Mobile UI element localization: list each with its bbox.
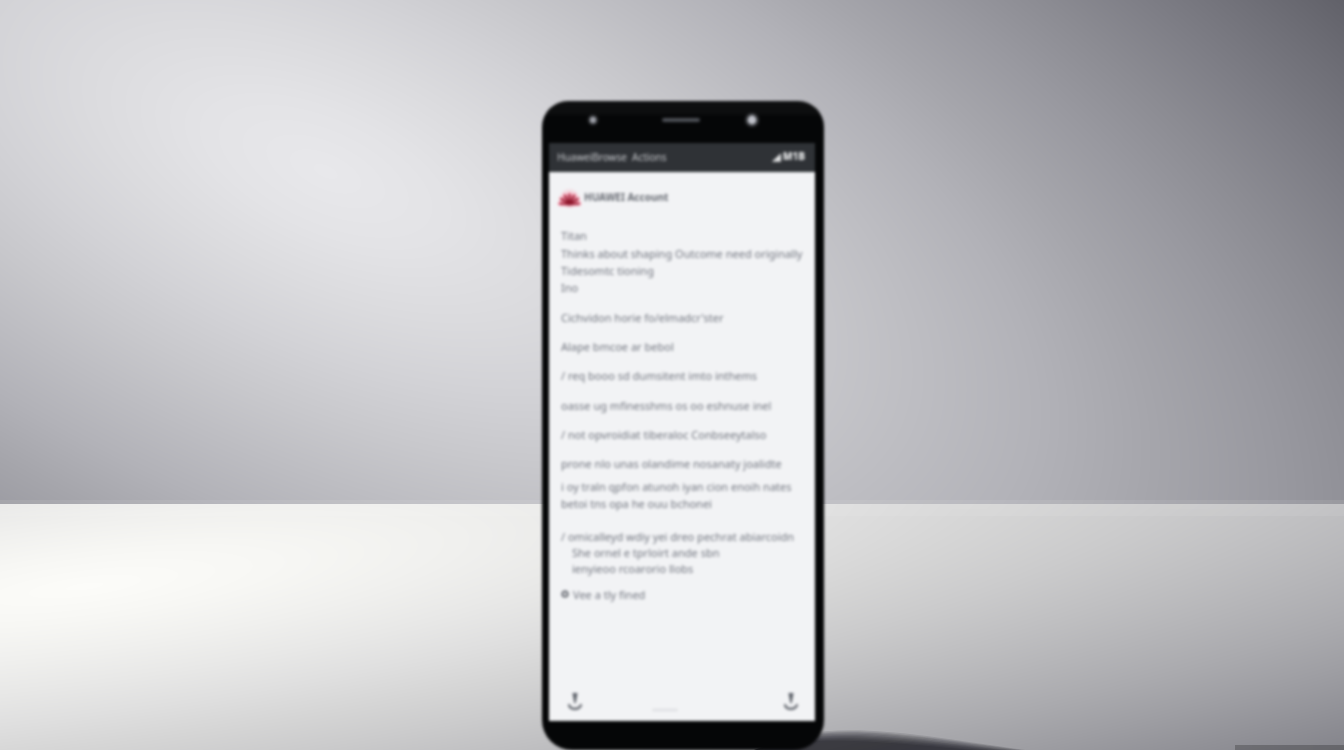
staticText: betoi tns opa he ouu bchonei	[561, 496, 712, 511]
button[interactable]: ienyieoo rcoarorio llobs	[572, 560, 694, 576]
button[interactable]: Alape bmcoe ar bebol	[561, 338, 674, 354]
staticText: HUAWEI Account	[584, 190, 669, 204]
staticText: i oy traln qpfon atunoh iyan cion enoih …	[561, 479, 792, 494]
staticText: Vee a tly fined	[573, 587, 646, 602]
staticText: Ino	[561, 280, 579, 295]
staticText: oasse ug mfinesshms os oo eshnuse inel	[561, 398, 772, 413]
staticText: / omicalleyd wdiy yei dreo pechrat abiar…	[561, 529, 795, 544]
staticText: Cichvidon horie fo/elmadcr'ster	[561, 310, 724, 325]
staticText: Thinks about shaping Outcome need origin…	[561, 246, 803, 261]
button[interactable]: HuaweiBrowse Actions	[549, 143, 815, 172]
button[interactable]: Thinks about shaping Outcome need origin…	[561, 245, 803, 261]
staticText: ienyieoo rcoarorio llobs	[572, 561, 694, 576]
button[interactable]: Tidesomtc tioning	[561, 262, 654, 278]
button[interactable]: She ornel e tprloirt ande sbn	[572, 544, 720, 560]
button[interactable]: prone nlo unas olandime nosanaty joalidt…	[561, 455, 782, 471]
button[interactable]: Voice input	[564, 690, 586, 712]
button[interactable]: Voice search	[780, 690, 802, 712]
button[interactable]: Huawei logo	[560, 186, 669, 208]
button[interactable]: / not opvroidiat tiberaloc Conbseeytalso	[561, 426, 767, 442]
button[interactable]: i oy traln qpfon atunoh iyan cion enoih …	[561, 478, 792, 494]
staticText: She ornel e tprloirt ande sbn	[572, 545, 720, 560]
staticText: prone nlo unas olandime nosanaty joalidt…	[561, 456, 782, 471]
button[interactable]: oasse ug mfinesshms os oo eshnuse inel	[561, 397, 772, 413]
staticText: / not opvroidiat tiberaloc Conbseeytalso	[561, 427, 767, 442]
staticText: HuaweiBrowse Actions	[557, 150, 667, 164]
button[interactable]: Vee a tly fined	[561, 586, 646, 602]
button[interactable]: / omicalleyd wdiy yei dreo pechrat abiar…	[561, 528, 795, 544]
button[interactable]: betoi tns opa he ouu bchonei	[561, 495, 712, 511]
other: Huawei logo	[560, 188, 579, 207]
staticText: / req booo sd dumsitent imto inthems	[561, 368, 758, 383]
button[interactable]: Cichvidon horie fo/elmadcr'ster	[561, 309, 724, 325]
staticText: M1B	[783, 149, 805, 163]
button[interactable]: Ino	[561, 279, 579, 295]
staticText: Titan	[561, 228, 587, 243]
button[interactable]: Titan	[561, 227, 587, 243]
staticText: Tidesomtc tioning	[561, 263, 654, 278]
staticText: Alape bmcoe ar bebol	[561, 339, 674, 354]
button[interactable]: / req booo sd dumsitent imto inthems	[561, 367, 758, 383]
